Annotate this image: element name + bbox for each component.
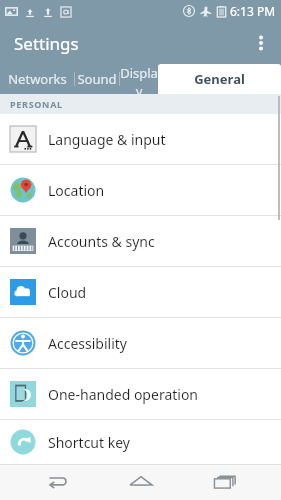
button[interactable]: One-handed operation (0, 369, 281, 419)
staticText: 6:13 PM (230, 3, 276, 19)
staticText: Shortcut key (48, 433, 130, 452)
staticText: Networks (8, 70, 67, 88)
button[interactable]: Networks (0, 64, 74, 94)
button[interactable]: Back (28, 464, 84, 500)
staticText: Cloud (48, 283, 87, 302)
button[interactable]: More options (241, 23, 281, 63)
button[interactable]: General (158, 64, 281, 94)
staticText: Sound (77, 70, 117, 88)
button[interactable]: Location (0, 165, 281, 215)
button[interactable]: Shortcut key (0, 420, 281, 464)
staticText: General (194, 70, 245, 88)
staticText: Settings (14, 32, 79, 55)
button[interactable]: Recent apps (197, 464, 253, 500)
button[interactable]: Accounts & sync (0, 216, 281, 266)
staticText: Display (120, 64, 158, 94)
button[interactable]: Home (113, 464, 169, 500)
button[interactable]: Sound (75, 64, 119, 94)
button[interactable]: Language & input (0, 114, 281, 164)
button[interactable]: Display (120, 64, 158, 94)
button[interactable]: Accessibility (0, 318, 281, 368)
staticText: Accounts & sync (48, 232, 155, 251)
button[interactable]: Cloud (0, 267, 281, 317)
staticText: Accessibility (48, 334, 127, 353)
staticText: One-handed operation (48, 385, 199, 404)
staticText: Location (48, 181, 105, 200)
staticText: PERSONAL (10, 98, 63, 110)
staticText: Language & input (48, 130, 166, 149)
